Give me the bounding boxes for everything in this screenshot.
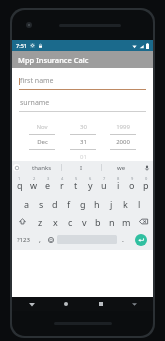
staticText: f [67, 198, 71, 210]
staticText: 9 [131, 176, 134, 181]
staticText: 3 [47, 176, 50, 181]
staticText: c [68, 216, 73, 228]
staticText: 5 [75, 176, 78, 181]
button[interactable]: j [104, 196, 118, 211]
staticText: u [101, 179, 107, 191]
button[interactable]: thanks [22, 161, 61, 174]
staticText: ?123 [17, 236, 30, 244]
staticText: first name [20, 76, 54, 86]
staticText: Nov [36, 123, 48, 131]
button[interactable]: x [48, 214, 63, 229]
button[interactable]: Back [26, 298, 38, 310]
staticText: 2000 [116, 138, 130, 146]
button[interactable]: first name [19, 76, 146, 90]
button[interactable]: surname [19, 98, 146, 112]
staticText: 30 [80, 123, 87, 131]
button[interactable]: 8 [111, 175, 125, 193]
button[interactable]: m [119, 214, 133, 229]
staticText: 8 [117, 176, 120, 181]
staticText: e [45, 179, 51, 191]
button[interactable]: k [118, 196, 132, 211]
staticText: w [30, 179, 38, 191]
staticText: 7:51 [16, 42, 27, 49]
staticText: g [80, 198, 86, 210]
staticText: j [110, 198, 113, 210]
button[interactable]: 4 [55, 175, 69, 193]
staticText: Mpp Insurance Calc [18, 55, 89, 65]
staticText: r [60, 179, 64, 191]
button[interactable]: . [117, 232, 129, 247]
button[interactable]: 30 [67, 123, 99, 161]
button[interactable]: g [76, 196, 90, 211]
button[interactable]: f [62, 196, 76, 211]
button[interactable]: ?123 [12, 232, 34, 247]
staticText: 2 [33, 176, 36, 181]
button[interactable]: Hide keyboard [129, 299, 139, 309]
button[interactable]: n [105, 214, 119, 229]
button[interactable]: 1 [12, 175, 27, 193]
staticText: x [53, 216, 58, 228]
button[interactable]: 6 [83, 175, 97, 193]
button[interactable]: 3 [41, 175, 55, 193]
button[interactable]: Home [60, 298, 72, 310]
staticText: , [39, 235, 41, 245]
staticText: 31 [80, 138, 87, 146]
staticText: t [74, 179, 78, 191]
button[interactable]: 5 [69, 175, 83, 193]
staticText: a [24, 198, 30, 210]
button[interactable]: Enter [129, 232, 153, 247]
button[interactable]: Voice input [141, 161, 153, 174]
staticText: surname [20, 98, 50, 108]
staticText: 7 [103, 176, 106, 181]
staticText: z [38, 216, 43, 228]
staticText: 6 [89, 176, 92, 181]
button[interactable]: I [62, 161, 101, 174]
staticText: k [123, 198, 128, 210]
button[interactable]: s [34, 196, 48, 211]
staticText: Dec [37, 138, 48, 146]
staticText: d [52, 198, 58, 210]
staticText: i [117, 179, 120, 191]
staticText: 1999 [116, 123, 130, 131]
button[interactable]: l [132, 196, 146, 211]
staticText: 01 [80, 153, 87, 161]
button[interactable]: Nov [26, 123, 58, 161]
staticText: b [95, 216, 101, 228]
staticText: o [129, 179, 135, 191]
button[interactable]: Shift [12, 214, 33, 229]
button[interactable]: , [34, 232, 45, 247]
staticText: 4 [61, 176, 64, 181]
staticText: v [82, 216, 87, 228]
button[interactable]: Recent apps [95, 298, 107, 310]
button[interactable]: 9 [125, 175, 139, 193]
staticText: s [39, 198, 44, 210]
staticText: n [109, 216, 115, 228]
button[interactable]: Emoji [45, 232, 57, 247]
button[interactable]: v [77, 214, 91, 229]
button[interactable]: a [20, 196, 34, 211]
button[interactable]: 7 [97, 175, 111, 193]
button[interactable]: d [48, 196, 62, 211]
button[interactable]: Mpp Insurance Calc [12, 51, 153, 68]
button[interactable]: 1999 [107, 123, 139, 161]
button[interactable]: c [63, 214, 77, 229]
staticText: q [17, 179, 23, 191]
button[interactable]: 0 [139, 175, 153, 193]
button[interactable]: 2 [27, 175, 41, 193]
button[interactable]: we [102, 161, 141, 174]
staticText: 0 [145, 176, 148, 181]
staticText: l [138, 198, 141, 210]
button[interactable]: b [91, 214, 105, 229]
staticText: 1 [18, 176, 21, 181]
button[interactable]: z [33, 214, 48, 229]
button[interactable]: Google [13, 164, 20, 171]
staticText: we [117, 164, 126, 172]
staticText: I [80, 164, 83, 172]
staticText: p [143, 179, 149, 191]
button[interactable]: Backspace [133, 214, 153, 229]
staticText: h [94, 198, 100, 210]
staticText: thanks [32, 164, 52, 172]
button[interactable]: h [90, 196, 104, 211]
staticText: m [122, 216, 131, 228]
